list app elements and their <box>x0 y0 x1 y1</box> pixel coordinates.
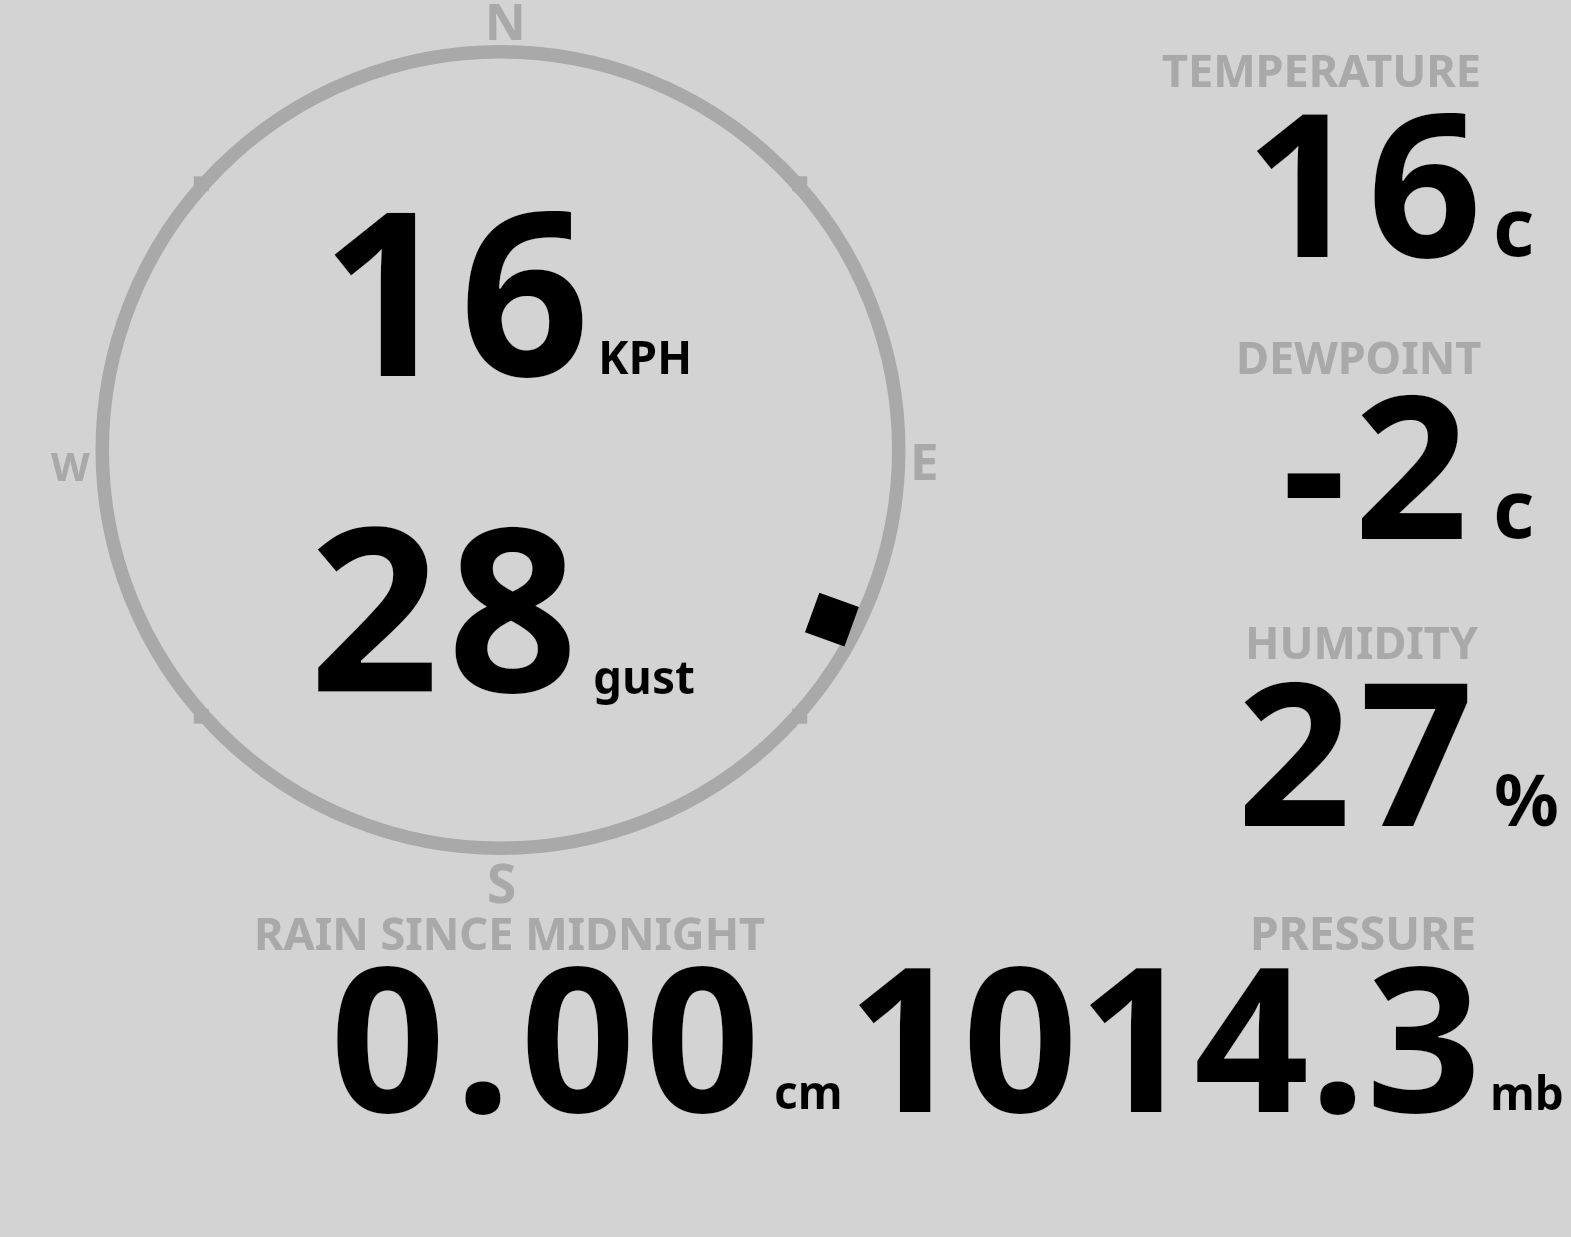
staticText: % <box>1494 749 1559 847</box>
staticText: DEWPOINT <box>1236 326 1482 387</box>
button[interactable]: Wind 16 KPH gusting 28, direction ESE <box>95 45 906 856</box>
staticText: c <box>1493 170 1535 279</box>
staticText: gust <box>593 645 696 708</box>
button[interactable]: Pressure 1014.3 mb <box>850 890 1565 1130</box>
staticText: 0.00 <box>330 896 770 1171</box>
staticText: cm <box>774 1060 843 1123</box>
staticText: RAIN SINCE MIDNIGHT <box>254 902 766 963</box>
staticText: 16 <box>321 132 598 443</box>
staticText: TEMPERATURE <box>1162 39 1481 100</box>
staticText: HUMIDITY <box>1245 611 1478 672</box>
staticText: S <box>487 846 517 918</box>
button[interactable]: Temperature 16 degrees C <box>1100 20 1571 290</box>
staticText: 1014.3 <box>847 896 1482 1171</box>
staticText: W <box>51 438 90 492</box>
staticText: -2 <box>1282 325 1477 597</box>
staticText: PRESSURE <box>1250 901 1476 964</box>
staticText: N <box>485 0 526 55</box>
staticText: 16 <box>1245 43 1490 315</box>
staticText: 27 <box>1237 612 1482 884</box>
button[interactable]: Humidity 27 percent <box>1100 590 1571 860</box>
staticText: KPH <box>598 325 693 388</box>
staticText: mb <box>1490 1061 1564 1124</box>
staticText: E <box>910 425 939 494</box>
button[interactable]: Rain since midnight 0.00 cm <box>250 890 850 1130</box>
staticText: c <box>1493 452 1535 561</box>
staticText: 28 <box>309 448 586 759</box>
button[interactable]: Dewpoint minus 2 degrees C <box>1100 300 1571 570</box>
